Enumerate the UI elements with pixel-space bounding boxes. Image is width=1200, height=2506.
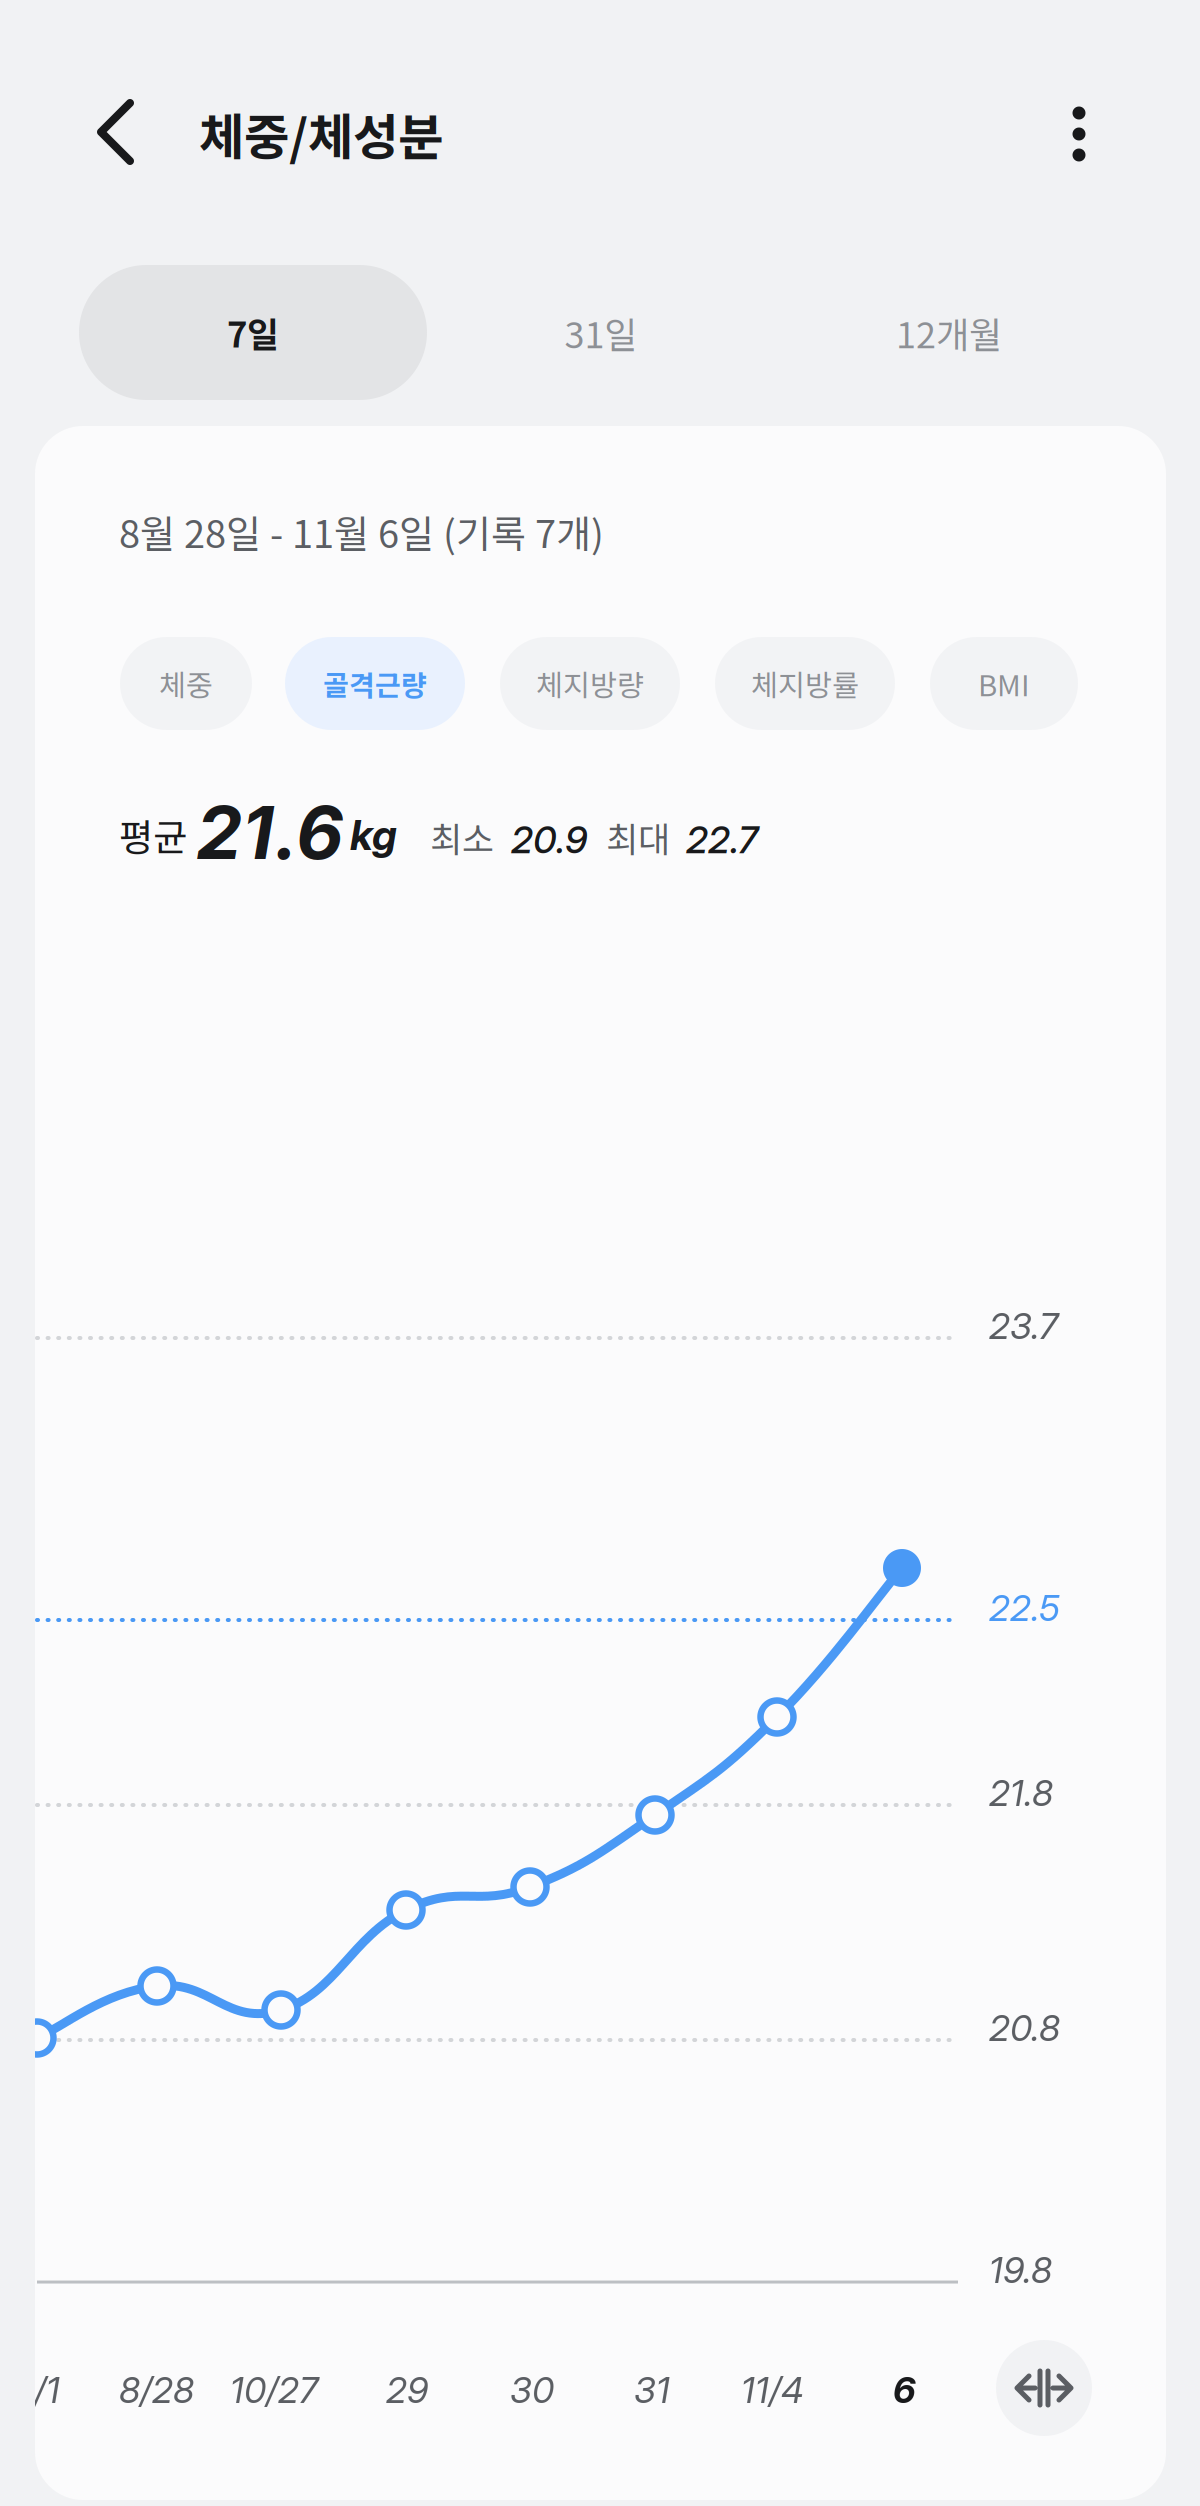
staticText: 19.8 [989,2248,1052,2292]
staticText: 23.7 [989,1304,1058,1348]
staticText: 6 [893,2368,916,2412]
staticText: 22.5 [989,1586,1060,1630]
button[interactable]: 12개월 [775,265,1123,400]
staticText: 29 [386,2368,428,2412]
button[interactable]: Back [56,77,166,187]
staticText: 21.8 [989,1771,1053,1815]
staticText: 10/27 [230,2368,318,2412]
button[interactable]: 골격근량 [285,637,465,730]
staticText: 30 [510,2368,554,2412]
staticText: 12개월 [896,306,1002,358]
staticText: BMI [978,662,1030,705]
button[interactable]: Expand chart [996,2340,1092,2436]
staticText: 체지방률 [751,662,859,705]
staticText: 골격근량 [323,663,427,704]
button[interactable]: 체지방률 [715,637,895,730]
staticText: 평균 [119,808,187,862]
button[interactable]: 31일 [427,265,775,400]
staticText: 8/28 [119,2368,194,2412]
staticText: 20.9 [511,817,587,862]
staticText: 11/4 [741,2368,804,2412]
staticText: 8월 28일 - 11월 6일 (기록 7개) [119,504,604,559]
button[interactable]: BMI [930,637,1078,730]
staticText: 31일 [564,306,637,358]
button[interactable]: 체중 [120,637,252,730]
button[interactable]: More options [989,29,1085,139]
staticText: 체지방량 [536,662,644,705]
staticText: kg [350,810,397,860]
staticText: 20.8 [989,2006,1060,2050]
staticText: 체중 [159,662,213,705]
staticText: 22.7 [686,817,758,862]
staticText: 7일 [227,307,279,358]
staticText: 체중/체성분 [199,98,443,169]
button[interactable]: 7일 [79,265,427,400]
staticText: 21.6 [196,788,344,877]
staticText: 최대 [606,812,670,862]
staticText: 31 [634,2368,670,2412]
staticText: 최소 [430,812,494,862]
staticText: /1 [34,2368,60,2412]
button[interactable]: 체지방량 [500,637,680,730]
